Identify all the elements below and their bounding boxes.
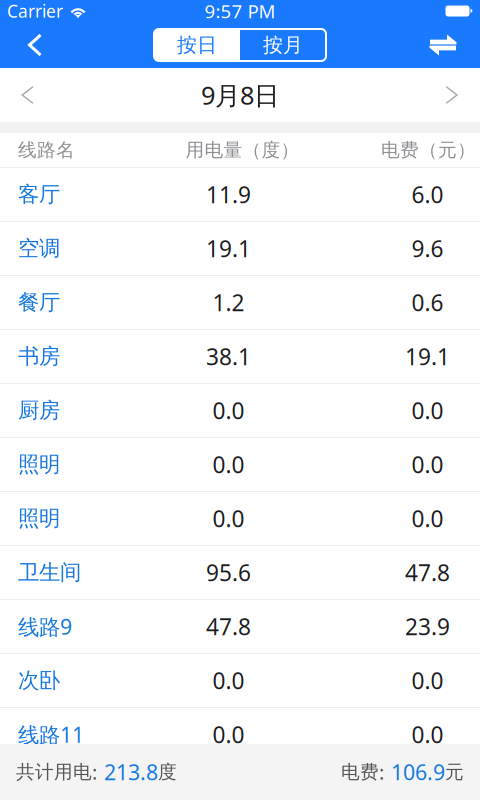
staticText: 按日 — [177, 33, 217, 57]
staticText: 95.6 — [206, 557, 251, 587]
staticText: 线路11 — [18, 720, 84, 749]
staticText: 线路名 — [18, 138, 75, 161]
button[interactable]: 线路11 — [0, 708, 480, 762]
staticText: 19.1 — [206, 233, 251, 263]
staticText: 电费 — [341, 760, 379, 783]
staticText: 213.8 — [104, 758, 158, 786]
staticText: 1.2 — [212, 287, 244, 317]
staticText: 0.0 — [212, 719, 244, 749]
button[interactable]: 空调 — [0, 222, 480, 276]
staticText: 卫生间 — [18, 559, 81, 586]
button[interactable]: 切换 — [417, 22, 469, 68]
button[interactable]: 厨房 — [0, 384, 480, 438]
staticText: 元 — [445, 760, 464, 783]
button[interactable]: 线路9 — [0, 600, 480, 654]
staticText: 0.0 — [212, 665, 244, 695]
staticText: 0.0 — [212, 395, 244, 425]
staticText: 19.1 — [405, 341, 450, 371]
staticText: 0.0 — [411, 449, 443, 479]
staticText: 9:57 PM — [204, 0, 275, 23]
button[interactable]: 客厅 — [0, 168, 480, 222]
staticText: 厨房 — [18, 397, 60, 424]
staticText: 照明 — [18, 451, 60, 478]
button[interactable]: 卫生间 — [0, 546, 480, 600]
staticText: : — [92, 759, 97, 785]
staticText: 6.0 — [411, 179, 443, 209]
staticText: : — [379, 759, 384, 785]
button[interactable]: 返回 — [10, 22, 60, 68]
staticText: 照明 — [18, 505, 60, 532]
staticText: 次卧 — [18, 667, 60, 694]
button[interactable]: 后一天 — [425, 68, 479, 122]
staticText: 按月 — [263, 33, 303, 57]
button[interactable]: 按月 — [240, 29, 326, 61]
staticText: 0.0 — [212, 503, 244, 533]
button[interactable]: 书房 — [0, 330, 480, 384]
staticText: 0.0 — [411, 503, 443, 533]
staticText: 书房 — [18, 343, 60, 370]
staticText: Carrier — [7, 0, 63, 22]
staticText: 23.9 — [405, 611, 450, 641]
staticText: 共计用电 — [16, 760, 92, 783]
staticText: 0.0 — [411, 665, 443, 695]
staticText: 线路9 — [18, 612, 72, 641]
button[interactable]: 按日 — [154, 29, 240, 61]
staticText: 0.6 — [411, 287, 443, 317]
staticText: 9月8日 — [201, 78, 279, 112]
staticText: 度 — [158, 760, 177, 783]
button[interactable]: 照明 — [0, 438, 480, 492]
button[interactable]: 照明 — [0, 492, 480, 546]
staticText: 电费（元） — [381, 138, 476, 161]
staticText: 11.9 — [206, 179, 251, 209]
staticText: 106.9 — [391, 758, 445, 786]
button[interactable]: 前一天 — [1, 68, 55, 122]
staticText: 客厅 — [18, 181, 60, 208]
staticText: 0.0 — [411, 719, 443, 749]
staticText: 用电量（度） — [185, 138, 299, 161]
staticText: 47.8 — [405, 557, 450, 587]
staticText: 9.6 — [411, 233, 443, 263]
button[interactable]: 餐厅 — [0, 276, 480, 330]
staticText: 餐厅 — [18, 289, 60, 316]
staticText: 0.0 — [212, 449, 244, 479]
button[interactable]: 次卧 — [0, 654, 480, 708]
staticText: 空调 — [18, 235, 60, 262]
staticText: 47.8 — [206, 611, 251, 641]
staticText: 0.0 — [411, 395, 443, 425]
staticText: 38.1 — [206, 341, 251, 371]
